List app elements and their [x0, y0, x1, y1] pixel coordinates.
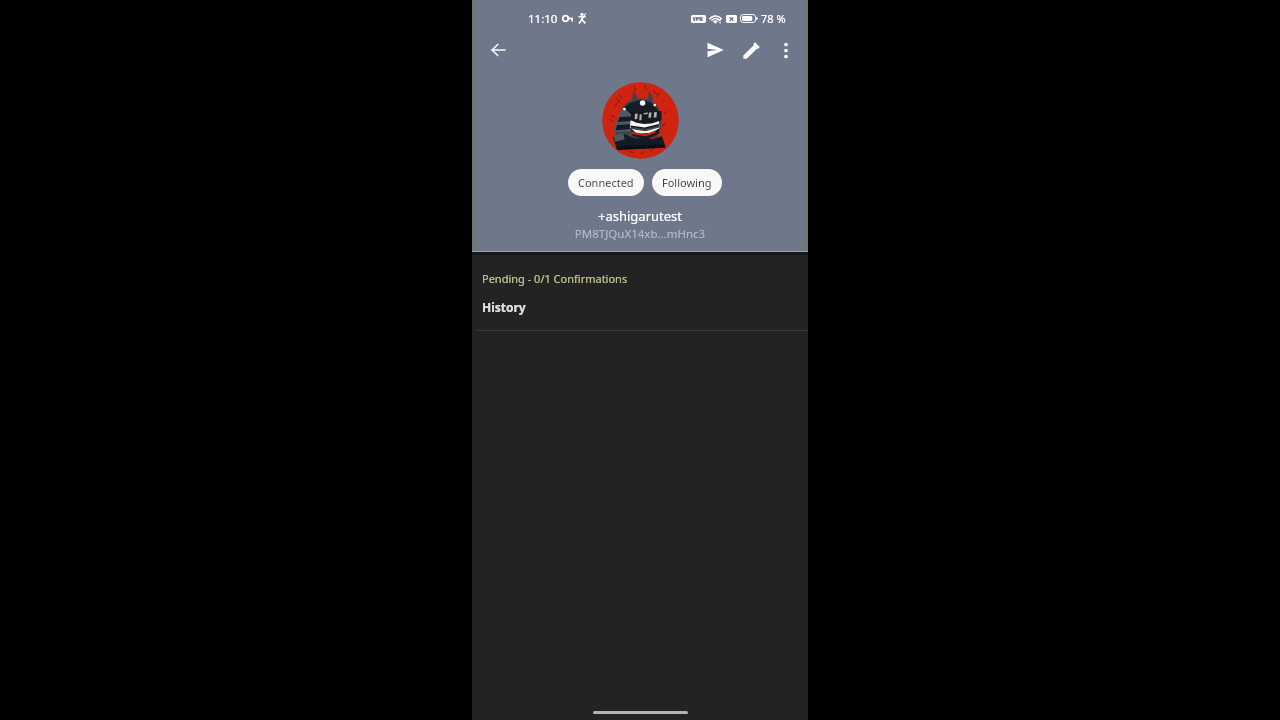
- staticText: Following: [662, 175, 712, 190]
- button[interactable]: Back: [480, 32, 516, 68]
- button[interactable]: Connected: [568, 169, 644, 196]
- button[interactable]: Edit: [733, 32, 769, 68]
- staticText: +ashigarutest: [472, 207, 808, 225]
- button[interactable]: Pending - 0/1 Confirmations: [472, 256, 808, 286]
- staticText: 11:10: [528, 11, 558, 27]
- staticText: History: [482, 299, 526, 315]
- button[interactable]: Profile picture: [602, 82, 679, 159]
- button[interactable]: Following: [652, 169, 722, 196]
- button[interactable]: History: [472, 289, 808, 315]
- staticText: Pending - 0/1 Confirmations: [482, 271, 628, 286]
- button[interactable]: Send: [697, 32, 733, 68]
- button[interactable]: More options: [769, 33, 803, 67]
- staticText: 78 %: [761, 11, 786, 26]
- staticText: PM8TJQuX14xb...mHnc3: [472, 226, 808, 242]
- staticText: Connected: [578, 175, 634, 190]
